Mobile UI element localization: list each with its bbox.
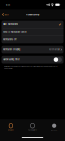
button[interactable]: Handwashing Timer xyxy=(53,57,62,62)
button[interactable]: Face Gallery xyxy=(22,120,43,134)
staticText: Discover xyxy=(51,129,58,131)
staticText: Automatically xyxy=(49,48,60,51)
staticText: Handwashing xyxy=(26,13,39,16)
staticText: Back xyxy=(4,13,8,16)
staticText: Handwashing Timer xyxy=(3,58,20,61)
button[interactable]: Send to Notification Center xyxy=(1,28,63,36)
staticText: 9:41 xyxy=(6,3,10,6)
staticText: Face Gallery xyxy=(28,129,37,131)
staticText: My Watch xyxy=(8,129,14,131)
button[interactable]: Notification Grouping xyxy=(1,46,63,53)
staticText: Apple Watch can detect when you start wa… xyxy=(4,65,58,69)
button[interactable]: Back xyxy=(0,9,11,19)
staticText: Notifications Off xyxy=(3,38,17,41)
staticText: Allow Notifications xyxy=(3,23,18,25)
staticText: Notification Grouping xyxy=(3,48,20,51)
staticText: Send to Notification Center xyxy=(3,31,27,33)
button[interactable]: Notifications Off xyxy=(1,36,63,43)
button[interactable]: My Watch xyxy=(0,120,22,134)
button[interactable]: Allow Notifications xyxy=(1,21,63,28)
button[interactable]: Discover xyxy=(43,120,65,134)
